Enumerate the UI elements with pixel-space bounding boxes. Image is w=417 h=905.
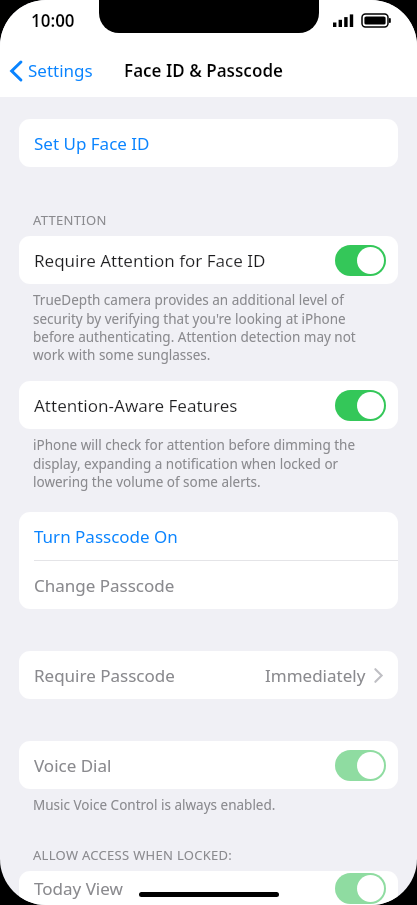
staticText: Settings <box>28 59 93 82</box>
staticText: Face ID & Passcode <box>124 59 283 82</box>
button[interactable]: Today View <box>335 873 386 904</box>
button[interactable]: Require Attention for Face ID <box>19 236 398 284</box>
staticText: Turn Passcode On <box>34 525 178 548</box>
staticText: 10:00 <box>31 9 75 32</box>
button[interactable]: Today View <box>19 871 398 905</box>
staticText: Attention-Aware Features <box>34 394 335 417</box>
button[interactable]: Voice Dial <box>19 741 398 789</box>
button[interactable]: Turn Passcode On <box>19 512 398 560</box>
button[interactable]: Require Attention for Face ID <box>335 245 386 276</box>
button[interactable]: Require Passcode <box>19 651 398 699</box>
staticText: Change Passcode <box>34 574 175 597</box>
button[interactable]: Change Passcode <box>19 561 398 609</box>
staticText: Voice Dial <box>34 754 335 777</box>
staticText: iPhone will check for attention before d… <box>33 436 385 490</box>
staticText: TrueDepth camera provides an additional … <box>33 291 385 363</box>
staticText: ATTENTION <box>33 211 107 229</box>
staticText: Set Up Face ID <box>34 132 150 155</box>
staticText: Require Attention for Face ID <box>34 249 335 272</box>
staticText: Music Voice Control is always enabled. <box>33 796 276 814</box>
button[interactable]: Attention-Aware Features <box>19 381 398 429</box>
button[interactable]: Set Up Face ID <box>19 119 398 167</box>
button[interactable]: Settings <box>0 51 101 90</box>
staticText: Today View <box>34 877 335 900</box>
button[interactable]: Attention-Aware Features <box>335 390 386 421</box>
staticText: Require Passcode <box>34 664 265 687</box>
staticText: ALLOW ACCESS WHEN LOCKED: <box>33 846 233 864</box>
staticText: Immediately <box>265 664 366 687</box>
button[interactable]: Voice Dial <box>335 750 386 781</box>
